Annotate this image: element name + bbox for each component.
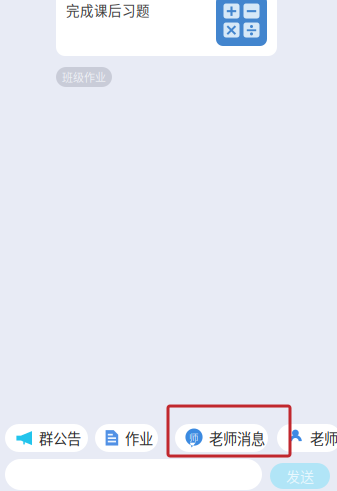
- button[interactable]: 师: [175, 424, 268, 452]
- staticText: 班级作业: [62, 69, 106, 85]
- button[interactable]: 发送: [270, 463, 330, 489]
- button[interactable]: 群公告: [5, 424, 88, 452]
- staticText: 发送: [286, 466, 314, 486]
- staticText: 老师消息: [209, 428, 265, 448]
- button[interactable]: 作业: [95, 424, 158, 452]
- staticText: 群公告: [39, 428, 81, 448]
- button[interactable]: Message input: [5, 459, 262, 490]
- staticText: 老师: [310, 428, 337, 448]
- staticText: 作业: [125, 428, 153, 448]
- staticText: 完成课后习题: [66, 0, 150, 19]
- button[interactable]: 老师: [277, 424, 337, 452]
- staticText: 师: [189, 430, 199, 444]
